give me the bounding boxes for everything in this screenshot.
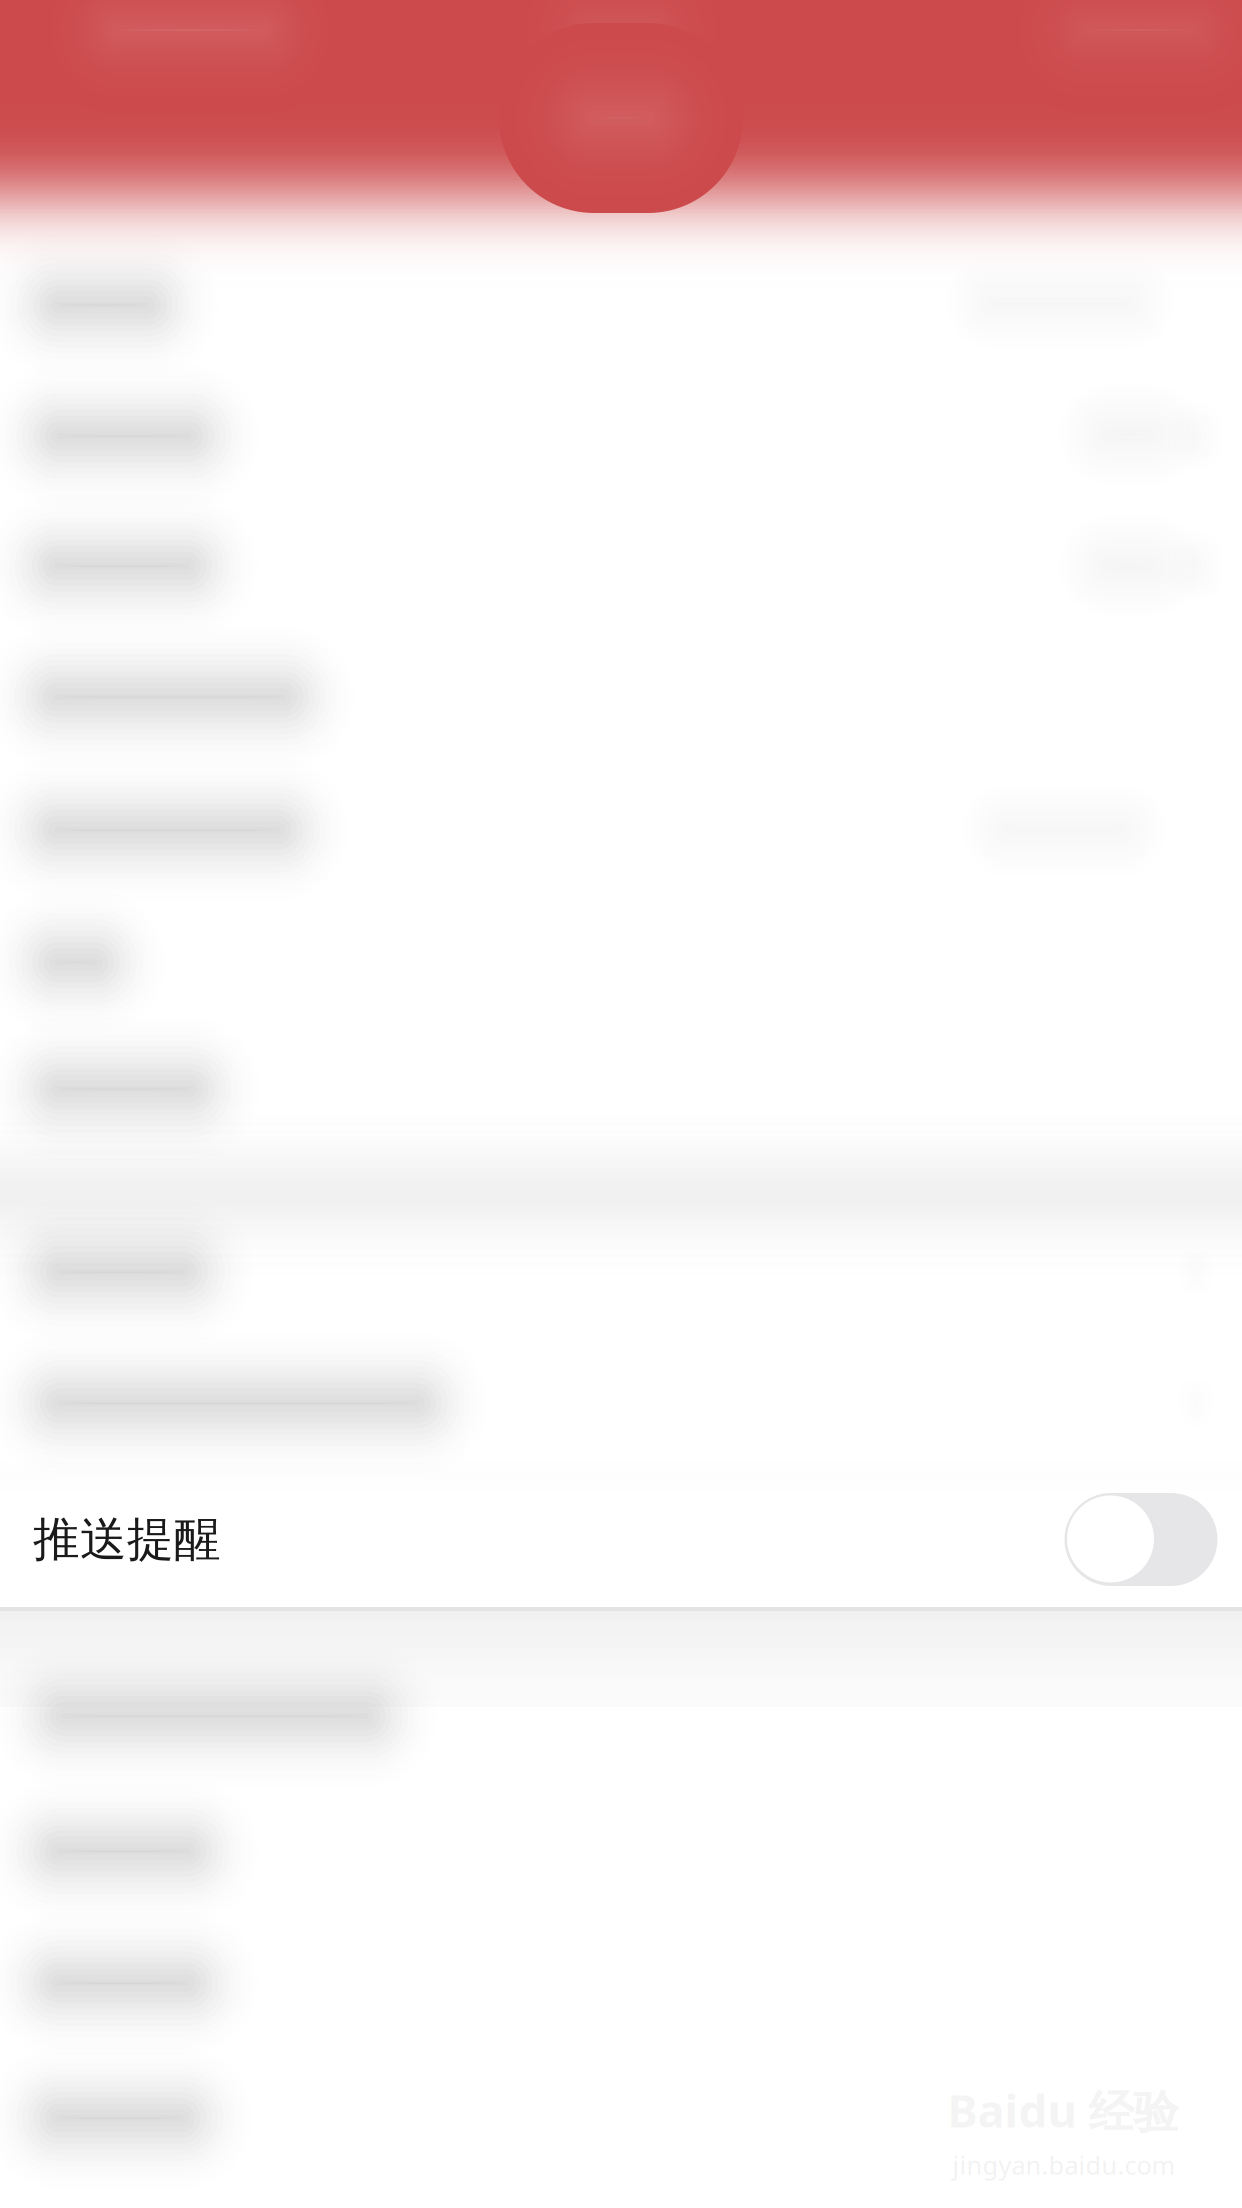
staticText: Baidu 经验: [947, 2080, 1178, 2140]
staticText: jingyan.baidu.com: [952, 2148, 1175, 2182]
button[interactable]: 推送提醒: [0, 1473, 1242, 1606]
staticText: 推送提醒: [33, 1511, 221, 1568]
